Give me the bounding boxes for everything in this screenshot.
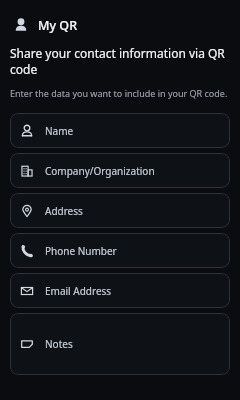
- staticText: My QR: [38, 17, 78, 34]
- other: Profile: [13, 17, 29, 33]
- staticText: Notes: [45, 337, 73, 351]
- staticText: Phone Number: [45, 244, 117, 258]
- button[interactable]: Company/Organization: [10, 153, 230, 188]
- staticText: Enter the data you want to include in yo…: [10, 87, 230, 99]
- staticText: Email Address: [45, 284, 112, 298]
- button[interactable]: Profile: [10, 14, 230, 36]
- staticText: Company/Organization: [45, 164, 155, 178]
- button[interactable]: Address: [10, 193, 230, 228]
- button[interactable]: Name: [10, 113, 230, 148]
- button[interactable]: Notes: [10, 313, 230, 375]
- staticText: Name: [45, 124, 74, 138]
- button[interactable]: Email Address: [10, 273, 230, 308]
- button[interactable]: Phone Number: [10, 233, 230, 268]
- staticText: Address: [45, 204, 83, 218]
- staticText: Share your contact information via QR co…: [10, 45, 230, 78]
